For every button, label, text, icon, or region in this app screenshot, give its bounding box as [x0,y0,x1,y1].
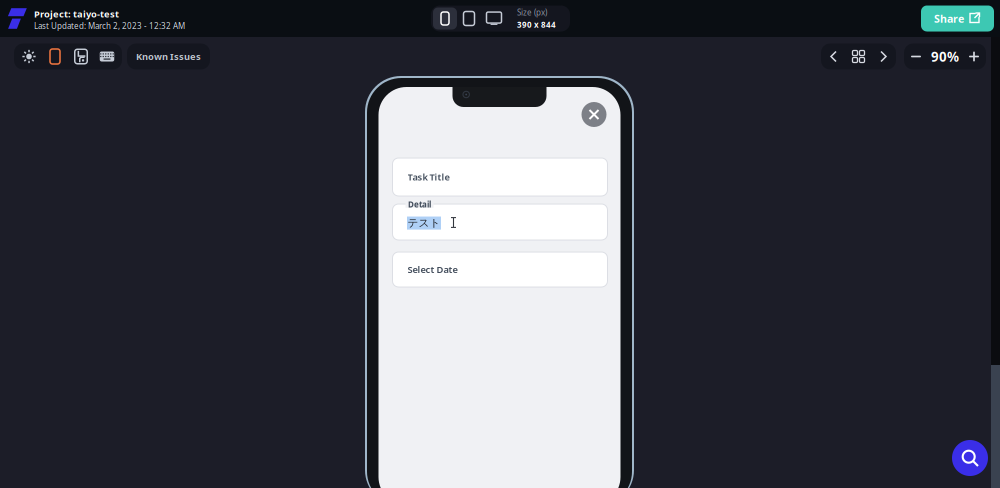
staticText: Known Issues [136,50,201,63]
staticText: 390 x 844 [517,19,556,30]
button[interactable]: Keyboard [94,43,120,69]
button[interactable]: Tablet size [457,7,481,29]
staticText: Detail [408,199,431,210]
button[interactable]: Select Date [392,252,607,287]
button[interactable]: All screens [846,43,871,69]
staticText: Share [934,11,964,26]
button[interactable]: Share [921,5,994,31]
button[interactable]: Phone size [433,7,457,29]
button[interactable]: Next screen [871,43,896,69]
button[interactable]: Zoom in [962,43,986,69]
staticText: テスト [407,216,440,230]
button[interactable]: Search [952,440,988,476]
button[interactable]: Close [581,102,606,127]
button[interactable]: Zoom out [904,43,928,69]
staticText: Last Updated: March 2, 2023 - 12:32 AM [34,21,185,31]
button[interactable]: Device frame [42,43,68,69]
staticText: Task Title [407,171,449,183]
button[interactable]: Appearance [16,43,42,69]
staticText: Size (px) [517,7,547,18]
button[interactable]: Known Issues [127,43,210,69]
staticText: 90% [931,48,959,65]
button[interactable]: Save [68,43,94,69]
staticText: Project: taiyo-test [34,8,119,20]
button[interactable]: Task Title [392,158,607,196]
button[interactable]: Desktop size [481,7,507,29]
button[interactable]: Previous screen [821,43,846,69]
staticText: Select Date [407,263,457,276]
